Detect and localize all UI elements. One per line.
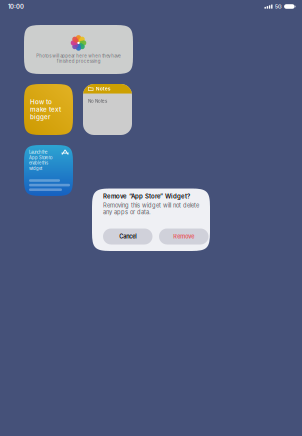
staticText: How to make text bigger [30,98,61,121]
button[interactable]: Notes [83,84,132,135]
button[interactable]: Cancel [103,228,152,244]
staticText: enable this [29,161,48,166]
staticText: App Store to [29,155,52,160]
staticText: Cancel [119,233,136,240]
button[interactable]: Photos will appear here when they have f… [24,25,133,74]
staticText: Notes [96,86,111,92]
staticText: No Notes [88,98,107,104]
staticText: Remove [173,233,194,240]
button[interactable]: Launch the [24,145,73,196]
staticText: widget [29,166,42,171]
staticText: Removing this widget will not delete any… [103,202,199,216]
staticText: Remove “App Store” Widget? [103,192,190,200]
staticText: Photos will appear here when they have f… [36,53,121,64]
button[interactable]: How to make text bigger [24,84,73,135]
staticText: Launch the [29,150,47,155]
staticText: 5G [275,3,282,10]
staticText: 10:00 [8,3,24,10]
button[interactable]: Remove [159,228,208,244]
